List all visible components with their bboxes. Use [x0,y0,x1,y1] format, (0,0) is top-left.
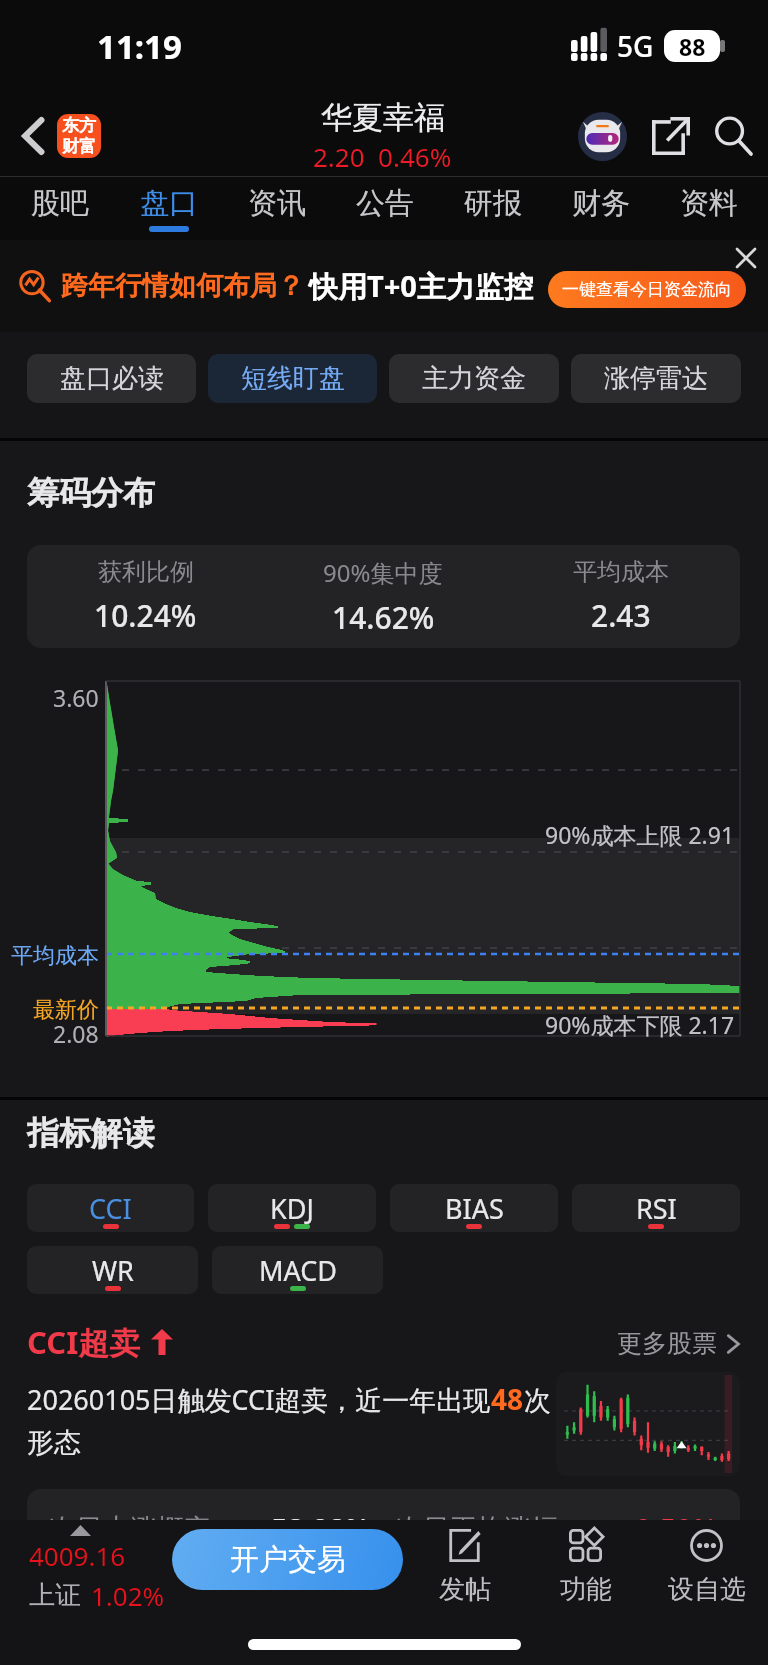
staticText: 主力资金 [422,362,526,395]
staticText: 14.62% [332,597,435,638]
staticText: 跨年行情如何布局？ [61,269,304,303]
staticText: 设自选 [668,1573,746,1606]
staticText: CCI超卖 [27,1321,141,1363]
staticText: 更多股票 [617,1328,717,1359]
staticText: RSI [636,1190,677,1227]
staticText: 获利比例 [98,557,194,587]
button[interactable]: Share [640,105,702,167]
staticText: 筹码分布 [27,473,155,513]
button[interactable]: 开户交易 [172,1529,403,1590]
button[interactable]: 资讯 [223,177,331,240]
staticText: 功能 [560,1573,612,1606]
button[interactable]: 发帖 [404,1529,525,1606]
staticText: 公告 [356,185,414,222]
staticText: 10.24% [94,595,197,636]
staticText: 52.08% [271,1509,370,1548]
staticText: 次日平均涨幅 [396,1512,558,1546]
staticText: 研报 [464,185,522,222]
button[interactable]: Close [730,242,762,274]
staticText: 3.60 [53,682,99,713]
staticText: 资料 [680,185,738,222]
button[interactable]: 财务 [547,177,655,240]
staticText: 2.43 [591,595,651,636]
button[interactable]: Search [702,105,764,167]
staticText: 5G [617,27,654,65]
button[interactable]: 盘口 [114,177,223,240]
button[interactable]: 研报 [439,177,547,240]
staticText: WR [92,1252,134,1289]
staticText: 开户交易 [230,1541,346,1578]
button[interactable]: RSI [572,1184,740,1232]
staticText: 90%成本上限 2.91 [545,819,735,850]
staticText: 形态 [27,1426,81,1460]
staticText: 快用T+0主力监控 [309,266,533,306]
button[interactable]: 股吧 [5,177,114,240]
staticText: 4009.16 [29,1538,126,1573]
staticText: 资讯 [248,185,306,222]
staticText: 东方 [62,115,96,136]
button[interactable] [556,1372,740,1476]
staticText: 平均成本 [573,557,669,587]
staticText: MACD [259,1252,337,1289]
staticText: 次 [524,1384,551,1418]
button[interactable]: Back [8,111,58,161]
button[interactable]: AI assistant [566,100,638,172]
staticText: 最新价 [33,996,99,1024]
staticText: 1.02% [91,1578,165,1613]
staticText: 20260105日触发CCI超卖，近一年出现 [27,1381,491,1418]
staticText: 2.08 [53,1018,99,1049]
staticText: 短线盯盘 [241,362,345,395]
button[interactable]: CCI超卖 [27,1321,173,1363]
staticText: 90%集中度 [323,556,443,589]
button[interactable]: 更多股票 [617,1328,740,1359]
staticText: KDJ [270,1190,314,1227]
button[interactable]: 公告 [331,177,439,240]
button[interactable]: 一键查看今日资金流向 [548,271,746,308]
button[interactable]: 涨停雷达 [571,354,741,403]
staticText: 90%成本下限 2.17 [545,1009,735,1040]
staticText: 次日上涨概率 [49,1512,211,1546]
staticText: 11:19 [97,24,182,69]
staticText: 财务 [572,185,630,222]
staticText: BIAS [445,1190,504,1227]
staticText: 发帖 [439,1573,491,1606]
button[interactable]: 4009.16 [29,1538,165,1613]
staticText: 财富 [62,136,96,157]
button[interactable]: WR [27,1246,198,1294]
button[interactable]: 短线盯盘 [208,354,377,403]
button[interactable]: MACD [212,1246,383,1294]
staticText: 0.59% [635,1509,718,1548]
staticText: 平均成本 [11,942,99,970]
staticText: 股吧 [31,185,89,222]
button[interactable]: 主力资金 [389,354,559,403]
button[interactable]: CCI [27,1184,194,1232]
staticText: 盘口必读 [60,362,164,395]
staticText: CCI [89,1190,132,1227]
button[interactable]: 设自选 [646,1529,767,1606]
staticText: 88 [679,31,706,62]
staticText: 盘口 [140,185,198,222]
staticText: 2.20 0.46% [313,139,452,174]
staticText: 指标解读 [27,1113,155,1153]
button[interactable]: KDJ [208,1184,376,1232]
button[interactable]: 资料 [655,177,763,240]
button[interactable]: East Money logo [57,114,101,158]
staticText: 48 [491,1380,524,1418]
staticText: 一键查看今日资金流向 [562,279,732,300]
staticText: 华夏幸福 [321,98,445,137]
staticText: 上证 [29,1579,81,1612]
button[interactable]: 盘口必读 [27,354,196,403]
button[interactable]: BIAS [390,1184,558,1232]
staticText: 涨停雷达 [604,362,708,395]
button[interactable]: 功能 [525,1529,646,1606]
